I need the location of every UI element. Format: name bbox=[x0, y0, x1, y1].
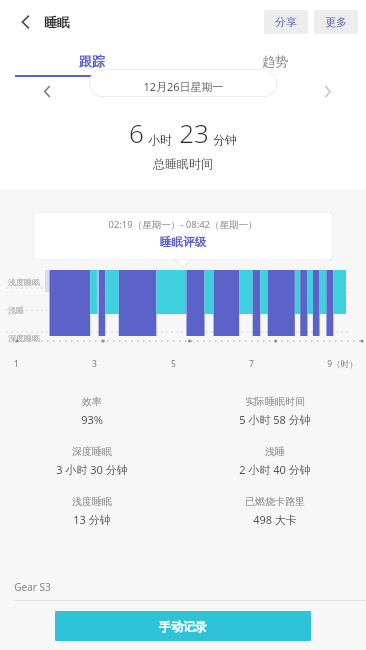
button[interactable]: 趋势 bbox=[183, 44, 366, 77]
staticText: 5 小时 58 分钟 bbox=[239, 412, 311, 427]
button[interactable]: 跟踪 bbox=[0, 44, 183, 77]
button[interactable]: 效率 bbox=[0, 395, 183, 427]
staticText: 分享 bbox=[275, 15, 297, 29]
staticText: 23 bbox=[179, 115, 209, 150]
staticText: 手动记录 bbox=[159, 619, 207, 634]
staticText: 02:19（星期一）- 08:42（星期一） bbox=[108, 218, 258, 231]
staticText: 小时 bbox=[148, 132, 172, 147]
button[interactable]: 浅睡 bbox=[183, 445, 366, 477]
button[interactable]: Back bbox=[8, 4, 44, 40]
button[interactable]: 更多 bbox=[314, 10, 358, 34]
button[interactable]: 深度睡眠 bbox=[0, 445, 183, 477]
button[interactable]: 手动记录 bbox=[55, 611, 311, 641]
staticText: 6 bbox=[129, 115, 144, 150]
staticText: 2 小时 40 分钟 bbox=[239, 462, 311, 477]
staticText: 深度睡眠 bbox=[72, 445, 112, 458]
button[interactable]: 实际睡眠时间 bbox=[183, 395, 366, 427]
staticText: 9（时） bbox=[327, 358, 358, 370]
button[interactable]: 浅度睡眠 bbox=[0, 495, 183, 527]
staticText: 跟踪 bbox=[79, 53, 105, 69]
staticText: 效率 bbox=[82, 395, 102, 408]
button[interactable]: Gear S3 bbox=[0, 574, 366, 600]
staticText: 浅睡 bbox=[8, 305, 24, 315]
staticText: 浅睡 bbox=[265, 445, 285, 458]
staticText: 总睡眠时间 bbox=[153, 156, 213, 171]
staticText: 93% bbox=[81, 412, 103, 427]
button[interactable]: 12月26日星期一 bbox=[89, 69, 277, 97]
staticText: 浅度睡眠 bbox=[72, 495, 112, 508]
staticText: 5 bbox=[171, 358, 176, 370]
staticText: 12月26日星期一 bbox=[143, 79, 224, 94]
button[interactable]: Previous day bbox=[36, 80, 58, 102]
staticText: 3 小时 30 分钟 bbox=[56, 462, 128, 477]
button[interactable]: Next day bbox=[316, 80, 338, 102]
staticText: 趋势 bbox=[262, 53, 288, 69]
staticText: 睡眠评级 bbox=[160, 235, 206, 249]
staticText: 深度睡眠 bbox=[8, 333, 40, 343]
staticText: 13 分钟 bbox=[73, 512, 111, 527]
button[interactable]: 02:19（星期一）- 08:42（星期一） bbox=[33, 212, 333, 260]
staticText: Gear S3 bbox=[14, 580, 51, 594]
staticText: 3 bbox=[92, 358, 97, 370]
staticText: 498 大卡 bbox=[253, 512, 297, 527]
staticText: 分钟 bbox=[213, 132, 237, 147]
staticText: 浅度睡眠 bbox=[8, 277, 40, 287]
staticText: 1 bbox=[14, 358, 19, 370]
staticText: 已燃烧卡路里 bbox=[245, 495, 305, 508]
staticText: 7 bbox=[249, 358, 254, 370]
button[interactable]: 分享 bbox=[264, 10, 308, 34]
staticText: 实际睡眠时间 bbox=[245, 395, 305, 408]
staticText: 更多 bbox=[325, 15, 347, 29]
button[interactable]: 已燃烧卡路里 bbox=[183, 495, 366, 527]
staticText: 睡眠 bbox=[44, 14, 70, 30]
